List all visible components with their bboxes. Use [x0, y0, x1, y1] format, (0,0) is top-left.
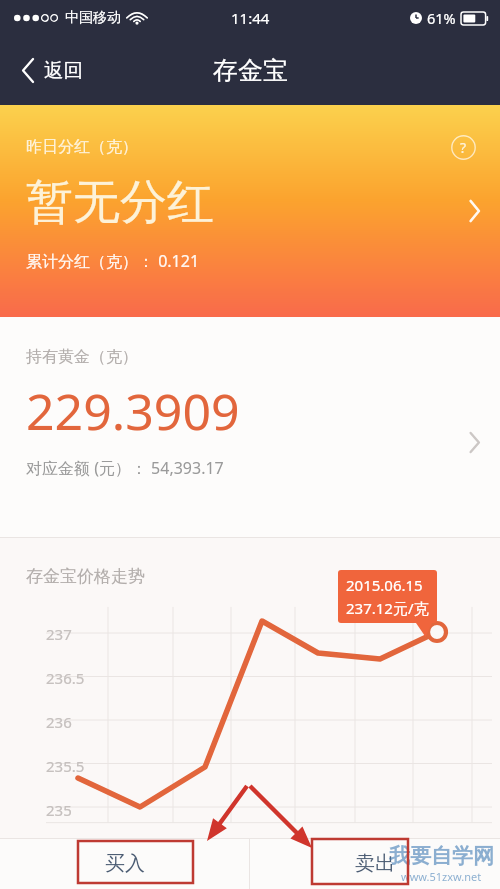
button[interactable]: 卖出: [250, 838, 500, 889]
button[interactable]: 昨日分红（克）: [0, 105, 500, 317]
button[interactable]: 买入: [0, 838, 249, 889]
staticText: 235: [46, 800, 72, 820]
staticText: 卖出: [355, 851, 395, 876]
staticText: 236: [46, 712, 72, 732]
staticText: 存金宝价格走势: [26, 566, 145, 587]
staticText: 累计分红（克）： 0.121: [26, 250, 200, 272]
staticText: 11:44: [231, 8, 270, 28]
staticText: 237: [46, 624, 72, 644]
staticText: 我要自学网: [389, 843, 494, 869]
button[interactable]: 持有黄金（克）: [0, 317, 500, 538]
staticText: 236.5: [46, 668, 85, 688]
staticText: 持有黄金（克）: [26, 347, 138, 367]
staticText: 昨日分红（克）: [26, 137, 138, 157]
staticText: www.51zxw.net: [401, 869, 482, 884]
staticText: 2015.06.15: [346, 575, 423, 595]
staticText: 61%: [427, 8, 456, 28]
staticText: 买入: [105, 851, 145, 876]
staticText: ?: [460, 138, 467, 157]
button[interactable]: 返回: [0, 48, 99, 93]
staticText: 返回: [44, 58, 83, 83]
staticText: 对应金额 (元）： 54,393.17: [26, 457, 224, 479]
button[interactable]: 帮助: [451, 135, 476, 160]
staticText: 235.5: [46, 756, 85, 776]
staticText: 存金宝: [213, 55, 288, 86]
staticText: 暂无分红: [26, 173, 214, 232]
staticText: 237.12元/克: [346, 598, 429, 618]
staticText: 229.3909: [26, 377, 240, 445]
staticText: 中国移动: [65, 9, 121, 27]
